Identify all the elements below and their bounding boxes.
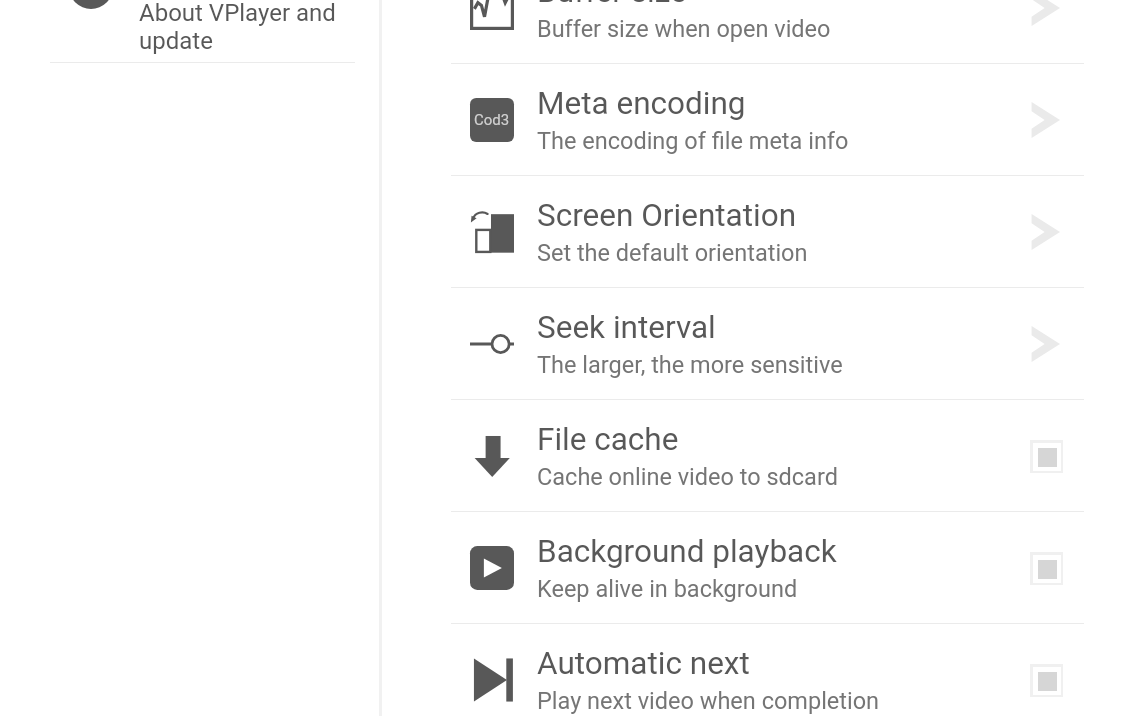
button[interactable]: Screen Orientation	[451, 176, 1084, 288]
button[interactable]: Toggle	[1016, 525, 1084, 611]
staticText: About VPlayer and update	[139, 0, 336, 55]
staticText: File cache	[537, 421, 679, 458]
staticText: Seek interval	[537, 309, 716, 346]
button[interactable]: Buffer size	[451, 0, 1084, 64]
staticText: Buffer size	[537, 0, 687, 10]
staticText: Screen Orientation	[537, 197, 797, 234]
button[interactable]: Seek interval	[451, 288, 1084, 400]
button[interactable]: Background playback	[451, 512, 1084, 624]
staticText: The encoding of file meta info	[537, 127, 849, 155]
button[interactable]: Automatic next	[451, 624, 1084, 716]
staticText: Buffer size when open video	[537, 15, 831, 43]
staticText: Set the default orientation	[537, 239, 808, 267]
staticText: Background playback	[537, 533, 837, 570]
staticText: Automatic next	[537, 645, 750, 682]
button[interactable]: Open	[1016, 301, 1084, 387]
button[interactable]: About VPlayer	[0, 0, 382, 63]
button[interactable]: Open	[1016, 0, 1084, 51]
button[interactable]: Toggle	[1016, 413, 1084, 499]
button[interactable]: File cache	[451, 400, 1084, 512]
button[interactable]: Open	[1016, 189, 1084, 275]
other: About VPlayer	[69, 0, 113, 9]
staticText: Keep alive in background	[537, 575, 798, 603]
staticText: Cod3	[474, 111, 510, 129]
button[interactable]: Open	[1016, 77, 1084, 163]
button[interactable]: Toggle	[1016, 637, 1084, 716]
staticText: Play next video when completion	[537, 687, 880, 715]
staticText: The larger, the more sensitive	[537, 351, 843, 379]
staticText: Cache online video to sdcard	[537, 463, 838, 491]
button[interactable]: Cod3	[451, 64, 1084, 176]
staticText: Meta encoding	[537, 85, 746, 122]
